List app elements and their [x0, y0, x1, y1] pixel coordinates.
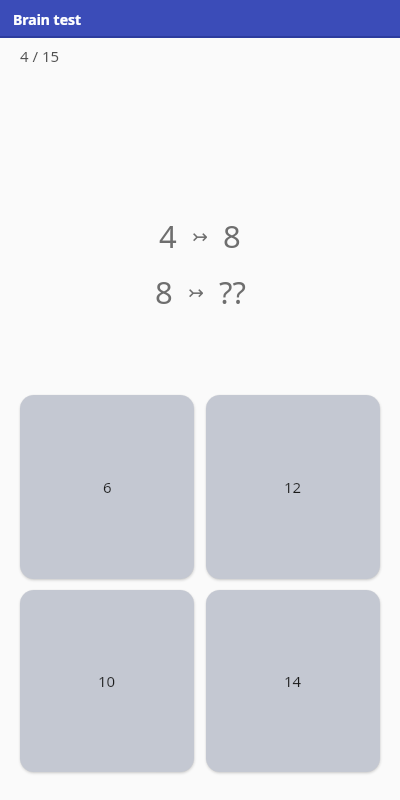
- staticText: ↣: [192, 225, 208, 247]
- staticText: 14: [284, 671, 302, 691]
- staticText: 8: [155, 271, 173, 313]
- staticText: 12: [284, 477, 302, 497]
- staticText: ??: [219, 271, 246, 313]
- button[interactable]: 6: [20, 395, 194, 579]
- staticText: 4 / 15: [20, 46, 60, 66]
- staticText: 6: [103, 477, 112, 497]
- staticText: ↣: [188, 281, 204, 303]
- staticText: Brain test: [13, 10, 82, 29]
- staticText: 4: [159, 215, 177, 257]
- staticText: 8: [223, 215, 241, 257]
- button[interactable]: 10: [20, 590, 194, 772]
- staticText: 10: [98, 671, 116, 691]
- button[interactable]: 14: [206, 590, 380, 772]
- button[interactable]: 12: [206, 395, 380, 579]
